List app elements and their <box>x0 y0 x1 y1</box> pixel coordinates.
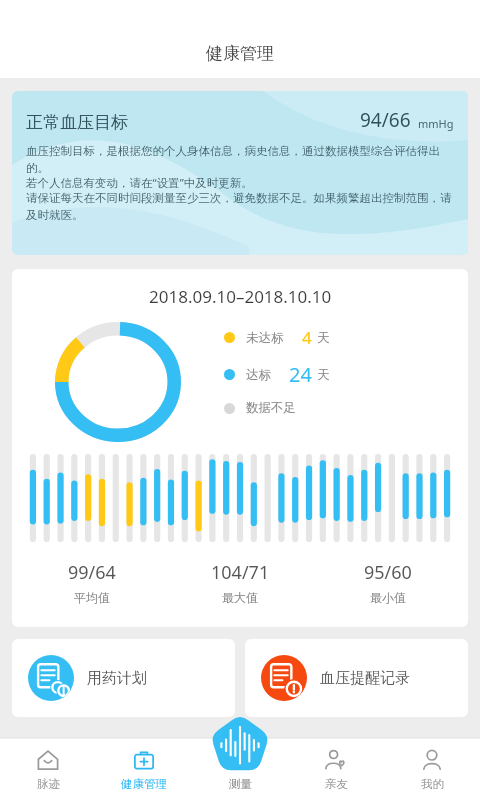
button[interactable]: 用药计划 <box>12 639 235 717</box>
staticText: 达标 <box>246 367 271 383</box>
staticText: 4 <box>302 326 312 349</box>
button[interactable]: 健康管理 <box>96 738 192 800</box>
staticText: 最小值 <box>370 590 406 605</box>
button[interactable]: 我的 <box>384 738 480 800</box>
staticText: 健康管理 <box>121 777 167 791</box>
staticText: 血压提醒记录 <box>320 669 410 688</box>
staticText: 99/64 <box>68 560 116 585</box>
button[interactable]: 104/71 <box>166 560 314 605</box>
button[interactable]: 99/64 <box>18 560 166 605</box>
button[interactable]: 达标 <box>224 361 330 388</box>
button[interactable]: 测量 <box>192 738 288 800</box>
staticText: 亲友 <box>325 777 348 791</box>
button[interactable]: 脉迹 <box>0 738 96 800</box>
staticText: 95/60 <box>364 560 412 585</box>
button[interactable]: 测量 <box>209 713 271 775</box>
button[interactable]: 95/60 <box>314 560 462 605</box>
staticText: 用药计划 <box>87 669 147 688</box>
staticText: 最大值 <box>222 590 258 605</box>
staticText: 平均值 <box>74 590 110 605</box>
button[interactable]: 数据不足 <box>224 400 296 416</box>
staticText: 我的 <box>421 777 444 791</box>
staticText: 24 <box>289 361 312 388</box>
staticText: 测量 <box>229 777 252 791</box>
staticText: 数据不足 <box>246 400 296 416</box>
staticText: 若个人信息有变动，请在“设置”中及时更新。 <box>26 175 253 191</box>
staticText: 血压控制目标，是根据您的个人身体信息，病史信息，通过数据模型综合评估得出的。 <box>26 144 454 175</box>
staticText: 94/66 <box>360 107 411 133</box>
staticText: 请保证每天在不同时间段测量至少三次，避免数据不足。如果频繁超出控制范围，请及时就… <box>26 191 454 222</box>
staticText: 健康管理 <box>206 43 274 64</box>
button[interactable]: 亲友 <box>288 738 384 800</box>
button[interactable]: 正常血压目标 <box>12 91 468 255</box>
staticText: mmHg <box>418 116 454 131</box>
staticText: 天 <box>317 367 330 383</box>
staticText: 104/71 <box>211 560 270 585</box>
staticText: 脉迹 <box>37 777 60 791</box>
staticText: 天 <box>317 330 330 346</box>
staticText: 正常血压目标 <box>26 112 128 133</box>
button[interactable]: 血压提醒记录 <box>245 639 468 717</box>
staticText: 未达标 <box>246 330 284 346</box>
button[interactable]: 未达标 <box>224 326 330 349</box>
staticText: 2018.09.10–2018.10.10 <box>149 285 332 308</box>
